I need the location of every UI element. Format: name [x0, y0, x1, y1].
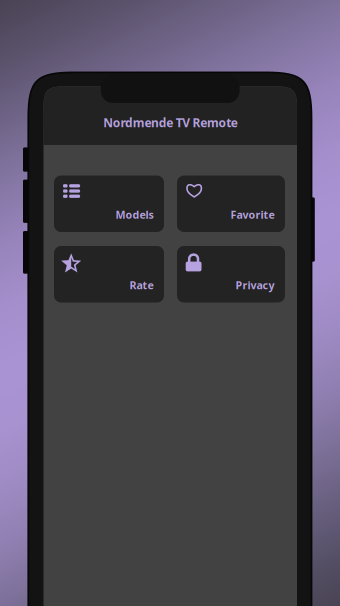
staticText: Models	[115, 207, 153, 222]
button[interactable]: Models	[54, 175, 164, 232]
button[interactable]: Rate	[54, 246, 164, 302]
staticText: Privacy	[235, 278, 274, 292]
staticText: Nordmende TV Remote	[103, 114, 238, 130]
button[interactable]: Privacy	[177, 246, 285, 302]
staticText: Favorite	[230, 207, 274, 222]
button[interactable]: Favorite	[177, 175, 285, 232]
staticText: Rate	[129, 278, 153, 292]
